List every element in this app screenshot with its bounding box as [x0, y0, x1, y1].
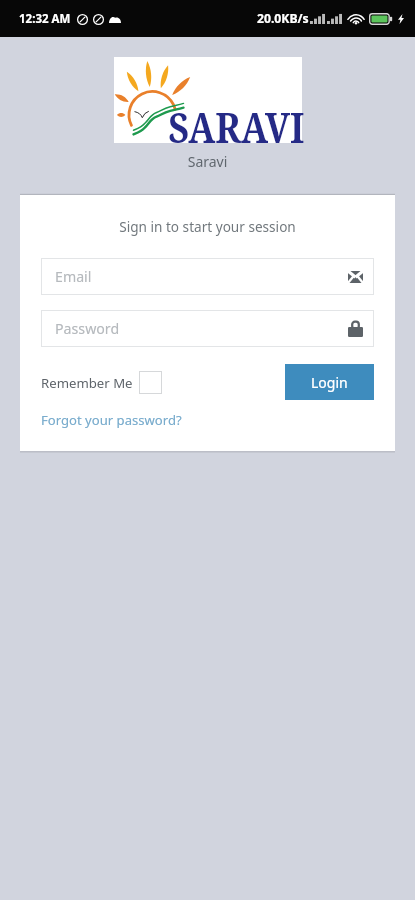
- staticText: Password: [55, 319, 120, 338]
- button[interactable]: Email: [55, 258, 363, 295]
- other: Password: [348, 321, 363, 337]
- staticText: SARAVI: [168, 98, 305, 155]
- staticText: Login: [311, 373, 348, 392]
- staticText: Sign in to start your session: [41, 217, 374, 236]
- other: Email: [348, 271, 363, 283]
- button[interactable]: Login: [285, 364, 374, 400]
- staticText: Saravi: [0, 152, 415, 171]
- button[interactable]: Remember Me: [41, 371, 162, 394]
- staticText: 20.0KB/s: [257, 10, 309, 27]
- staticText: Remember Me: [41, 374, 133, 392]
- staticText: Email: [55, 267, 92, 286]
- staticText: 12:32 AM: [19, 11, 71, 27]
- button[interactable]: Forgot your password?: [41, 411, 182, 429]
- button[interactable]: Password: [55, 310, 363, 347]
